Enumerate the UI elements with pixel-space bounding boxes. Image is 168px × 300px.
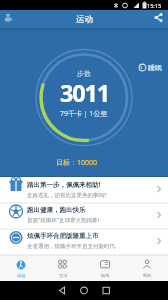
- button[interactable]: [145, 10, 168, 28]
- button[interactable]: 炫佩手环合肥版隆重上市: [0, 229, 168, 255]
- staticText: 目标：10000: [56, 158, 98, 168]
- staticText: 我的: [143, 273, 152, 278]
- staticText: 走路送礼，还有比这更美的事吗?: [27, 191, 107, 199]
- button[interactable]: 我的: [126, 255, 168, 281]
- button[interactable]: [95, 281, 116, 300]
- staticText: 步数: [77, 69, 91, 78]
- staticText: 睡眠: [148, 63, 162, 72]
- staticText: 首届"炫佩杯"足球赛火热招募!: [27, 216, 99, 224]
- staticText: 79千卡 | 1公里: [60, 109, 108, 119]
- staticText: 全省通用，炫佩手环开启支付新时代.: [27, 242, 117, 250]
- staticText: 3011: [60, 77, 109, 109]
- staticText: 15:15: [147, 2, 162, 9]
- staticText: 踏出第一步，佩佩来相助!: [27, 180, 101, 189]
- staticText: 生活: [59, 273, 68, 278]
- staticText: 钱包: [101, 273, 110, 278]
- button[interactable]: 跑出健康，跑出快乐: [0, 203, 168, 229]
- button[interactable]: 钱包: [84, 255, 126, 281]
- staticText: 跑出健康，跑出快乐: [27, 206, 86, 214]
- button[interactable]: [74, 281, 95, 300]
- button[interactable]: [53, 281, 74, 300]
- button[interactable]: 睡眠: [136, 61, 166, 74]
- button[interactable]: 运动: [0, 255, 42, 281]
- button[interactable]: 踏出第一步，佩佩来相助!: [0, 177, 168, 203]
- button[interactable]: 生活: [42, 255, 84, 281]
- staticText: 炫佩手环合肥版隆重上市: [27, 232, 99, 240]
- button[interactable]: [0, 14, 20, 28]
- staticText: 运动: [76, 14, 93, 25]
- staticText: 运动: [17, 273, 26, 278]
